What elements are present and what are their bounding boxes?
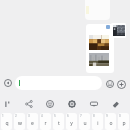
button[interactable]: w: [14, 113, 25, 130]
button[interactable]: [86, 24, 114, 73]
staticText: p: [122, 120, 126, 127]
staticText: u: [83, 120, 87, 127]
button[interactable]: Theme: [110, 98, 122, 110]
button[interactable]: Settings: [66, 98, 78, 110]
button[interactable]: q: [1, 113, 12, 130]
button[interactable]: GIF: [44, 98, 56, 110]
button[interactable]: Share: [23, 98, 35, 110]
staticText: 0: [119, 114, 121, 118]
button[interactable]: [15, 76, 102, 90]
button[interactable]: u: [79, 113, 90, 130]
button[interactable]: o: [105, 113, 116, 130]
button[interactable]: Add attachment: [115, 78, 127, 90]
staticText: t: [58, 120, 60, 127]
button[interactable]: i: [92, 113, 103, 130]
button[interactable]: e: [27, 113, 38, 130]
staticText: 4: [41, 114, 43, 118]
staticText: e: [31, 120, 34, 127]
staticText: r: [44, 120, 47, 127]
button[interactable]: Text editing: [1, 98, 13, 110]
staticText: 8: [93, 114, 95, 118]
button[interactable]: p: [118, 113, 129, 130]
button[interactable]: r: [40, 113, 51, 130]
staticText: w: [18, 120, 22, 127]
staticText: 9: [106, 114, 108, 118]
button[interactable]: Emoji: [104, 78, 116, 90]
staticText: i: [97, 120, 99, 127]
staticText: q: [5, 120, 9, 127]
button[interactable]: Clipboard: [88, 98, 100, 110]
button[interactable]: [85, 0, 110, 20]
button[interactable]: y: [66, 113, 77, 130]
staticText: 6: [67, 114, 69, 118]
staticText: 2: [15, 114, 17, 118]
staticText: 5: [54, 114, 56, 118]
staticText: 3: [28, 114, 30, 118]
staticText: o: [109, 120, 113, 127]
staticText: 7: [80, 114, 82, 118]
staticText: y: [70, 120, 73, 127]
staticText: 1: [2, 114, 4, 118]
button[interactable]: t: [53, 113, 64, 130]
button[interactable]: Expand toolbar: [2, 77, 14, 89]
button[interactable]: [111, 23, 126, 38]
